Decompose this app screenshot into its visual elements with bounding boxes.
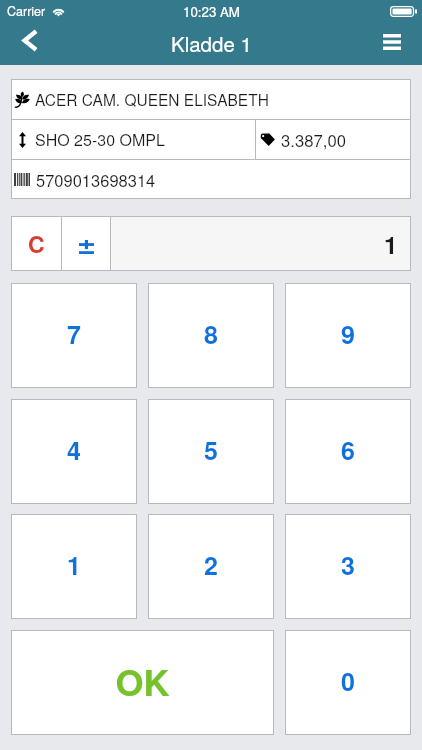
staticText: 10:23 AM — [183, 2, 240, 21]
button[interactable]: OK — [11, 630, 274, 735]
staticText: SHO 25-30 OMPL — [35, 128, 165, 151]
button[interactable]: Back — [0, 24, 56, 65]
button[interactable]: 8 — [148, 283, 274, 388]
button[interactable]: 2 — [148, 514, 274, 619]
button[interactable]: 9 — [285, 283, 411, 388]
staticText: 1 — [67, 547, 81, 583]
staticText: ACER CAM. QUEEN ELISABETH — [35, 88, 269, 110]
button[interactable]: 4 — [11, 399, 137, 504]
staticText: 9 — [341, 316, 355, 352]
button[interactable]: ACER CAM. QUEEN ELISABETH — [11, 79, 411, 119]
staticText: 2 — [204, 547, 218, 583]
staticText: 8 — [204, 316, 218, 352]
button[interactable]: SHO 25-30 OMPL — [11, 120, 255, 159]
staticText: 4 — [67, 432, 81, 468]
button[interactable]: 1 — [111, 216, 411, 271]
button[interactable]: 0 — [285, 630, 411, 735]
staticText: 1 — [384, 227, 398, 261]
button[interactable]: 6 — [285, 399, 411, 504]
button[interactable]: 7 — [11, 283, 137, 388]
staticText: 3.387,00 — [281, 128, 346, 152]
staticText: 7 — [67, 316, 81, 352]
staticText: 6 — [341, 432, 355, 468]
button[interactable]: 1 — [11, 514, 137, 619]
button[interactable]: 5709013698314 — [11, 160, 411, 199]
staticText: 0 — [341, 663, 355, 699]
staticText: OK — [115, 655, 170, 707]
staticText: C — [28, 227, 45, 260]
button[interactable]: Menu — [364, 24, 422, 65]
button[interactable]: 5 — [148, 399, 274, 504]
staticText: Carrier — [7, 2, 46, 20]
staticText: 5709013698314 — [36, 168, 156, 192]
button[interactable]: 3 — [285, 514, 411, 619]
staticText: 5 — [204, 432, 218, 468]
staticText: Kladde 1 — [171, 28, 252, 57]
button[interactable]: C — [11, 216, 61, 271]
button[interactable]: Plus minus — [62, 216, 110, 271]
button[interactable]: 3.387,00 — [256, 120, 346, 159]
staticText: 3 — [341, 547, 355, 583]
